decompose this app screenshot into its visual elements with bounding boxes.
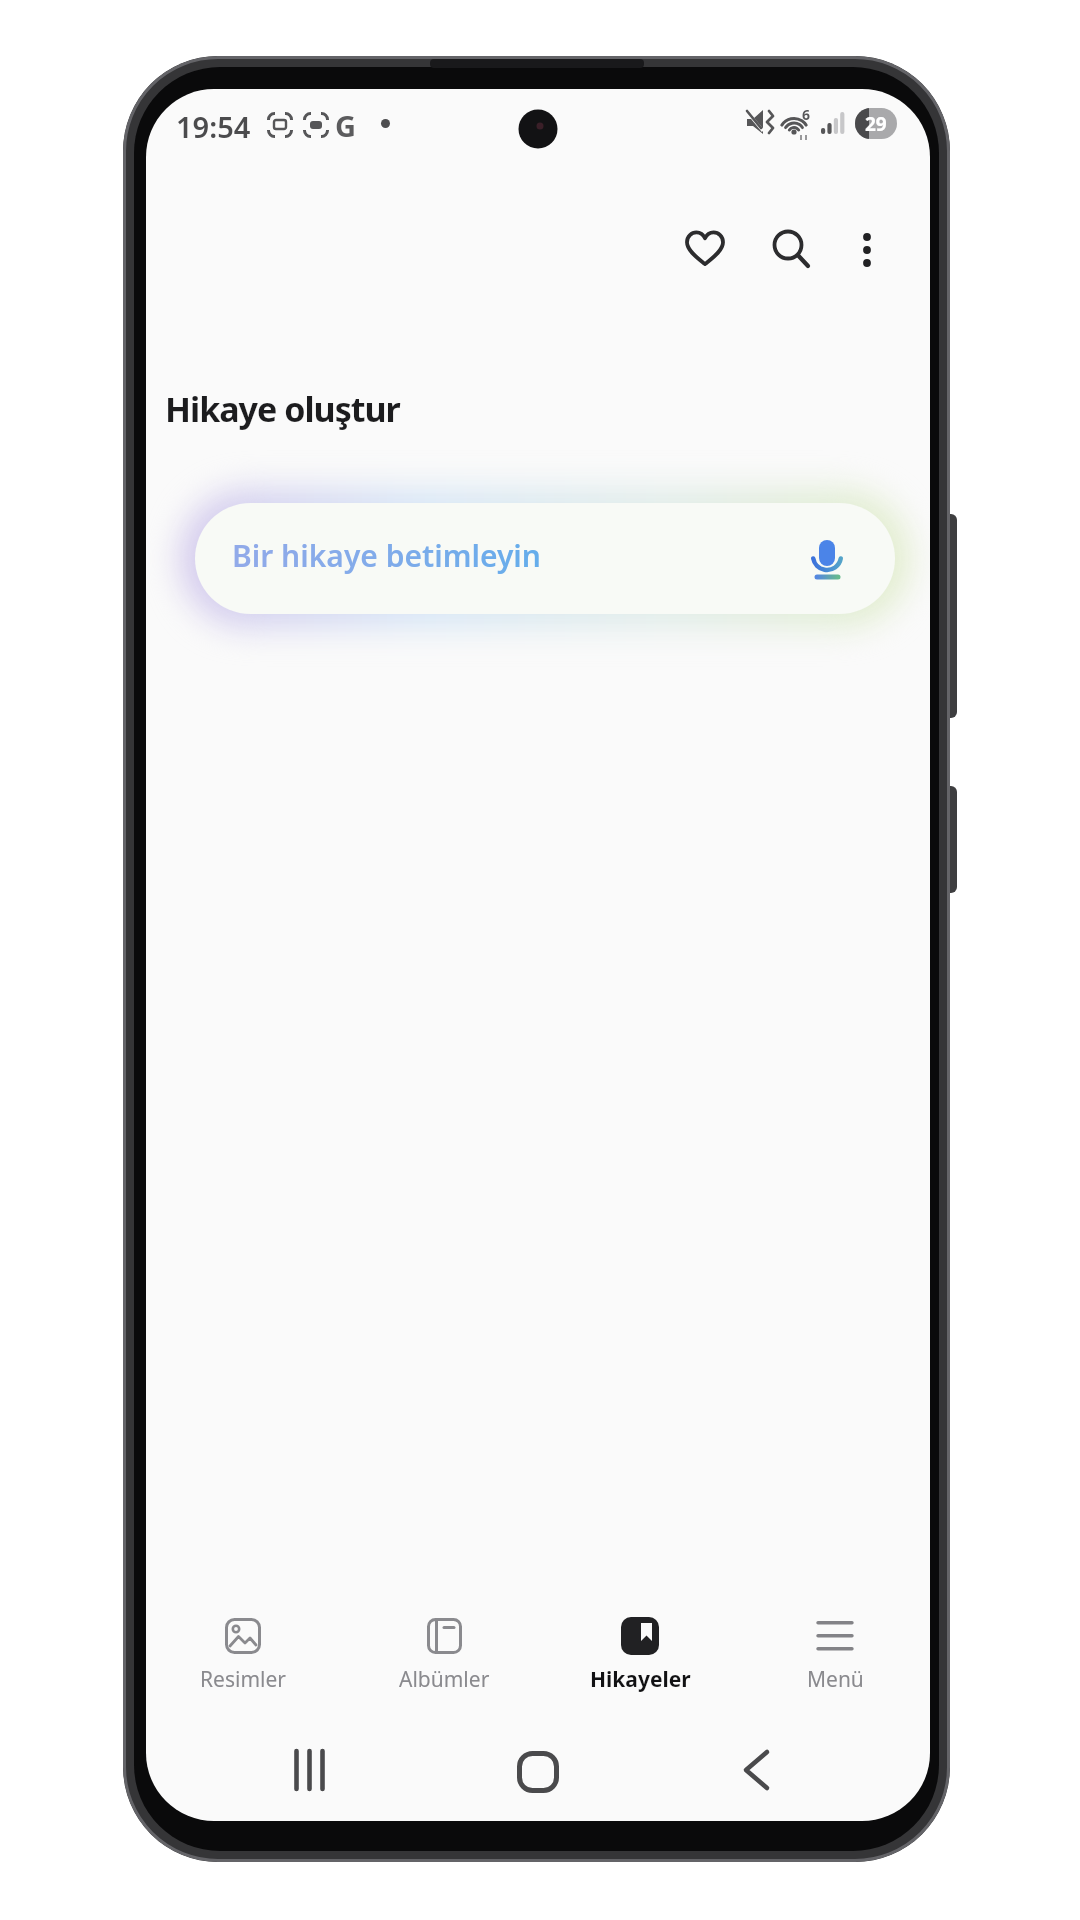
- button[interactable]: Menü: [755, 1608, 915, 1708]
- button[interactable]: Bir hikaye betimleyin: [195, 503, 895, 614]
- staticText: 29: [865, 111, 887, 137]
- staticText: Hikayeler: [590, 1665, 691, 1694]
- staticText: Menü: [807, 1665, 864, 1694]
- button[interactable]: [849, 230, 885, 270]
- staticText: Resimler: [200, 1665, 286, 1694]
- button[interactable]: [517, 1751, 559, 1793]
- button[interactable]: Albümler: [364, 1608, 524, 1708]
- button[interactable]: Hikayeler: [560, 1608, 720, 1708]
- button[interactable]: [294, 1750, 327, 1790]
- staticText: G: [335, 106, 356, 145]
- button[interactable]: Resimler: [163, 1608, 323, 1708]
- button[interactable]: [771, 230, 811, 270]
- staticText: 19:54: [176, 107, 251, 146]
- staticText: Hikaye oluştur: [165, 386, 400, 432]
- button[interactable]: [685, 230, 725, 270]
- button[interactable]: [740, 1750, 773, 1790]
- staticText: Bir hikaye betimleyin: [232, 535, 541, 576]
- staticText: Albümler: [399, 1665, 490, 1694]
- staticText: 6: [802, 105, 811, 124]
- button[interactable]: [809, 537, 846, 581]
